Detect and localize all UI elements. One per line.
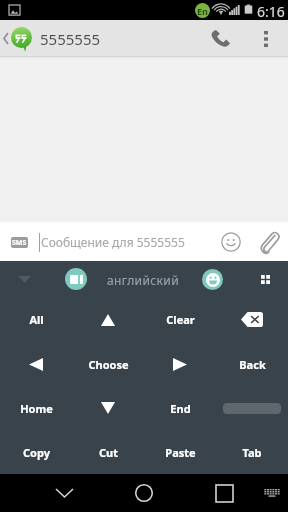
button[interactable]: Choose xyxy=(72,342,144,386)
staticText: Copy xyxy=(23,445,50,460)
button[interactable]: Call xyxy=(201,20,240,57)
button[interactable]: Emoji xyxy=(202,269,223,290)
staticText: Cut xyxy=(99,445,118,460)
staticText: Home xyxy=(20,401,53,416)
staticText: Clear xyxy=(166,312,195,327)
button[interactable]: Clear xyxy=(144,297,216,342)
button[interactable]: Insert emoji xyxy=(214,223,247,261)
button[interactable]: More apps xyxy=(252,261,278,297)
staticText: Paste xyxy=(165,445,196,460)
button[interactable]: Backspace xyxy=(216,297,288,342)
button[interactable]: Recent apps xyxy=(204,474,244,512)
staticText: Back xyxy=(239,357,266,372)
button[interactable]: Switch keyboard xyxy=(256,474,288,512)
button[interactable]: Space xyxy=(216,386,288,430)
staticText: SMS xyxy=(12,238,27,248)
button[interactable]: All xyxy=(0,297,72,342)
staticText: английский xyxy=(107,272,180,288)
button[interactable]: Back xyxy=(44,474,84,512)
staticText: End xyxy=(170,401,191,416)
button[interactable]: Home xyxy=(124,474,164,512)
staticText: All xyxy=(29,312,44,327)
button[interactable]: Left xyxy=(0,342,72,386)
button[interactable]: Copy xyxy=(0,430,72,474)
button[interactable]: Back xyxy=(0,20,190,57)
staticText: 5555555 xyxy=(40,29,101,49)
other: Back xyxy=(0,20,11,57)
staticText: Tab xyxy=(242,445,262,460)
button[interactable]: Right xyxy=(144,342,216,386)
button[interactable]: More options xyxy=(250,20,282,57)
button[interactable]: Change input layout xyxy=(65,268,87,290)
staticText: 6:16 xyxy=(257,2,285,21)
button[interactable]: Attach xyxy=(252,223,286,261)
button[interactable]: Hide keyboard xyxy=(9,261,39,297)
button[interactable]: Back xyxy=(216,342,288,386)
staticText: En xyxy=(197,5,208,17)
button[interactable]: Cut xyxy=(72,430,144,474)
button[interactable]: Tab xyxy=(216,430,288,474)
button[interactable]: Up xyxy=(72,297,144,342)
staticText: Choose xyxy=(88,357,129,372)
button[interactable]: Paste xyxy=(144,430,216,474)
button[interactable]: End xyxy=(144,386,216,430)
button[interactable]: Down xyxy=(72,386,144,430)
button[interactable]: SMS xyxy=(11,237,28,248)
staticText: Сообщение для 5555555 xyxy=(41,234,185,250)
button[interactable]: Home xyxy=(0,386,72,430)
